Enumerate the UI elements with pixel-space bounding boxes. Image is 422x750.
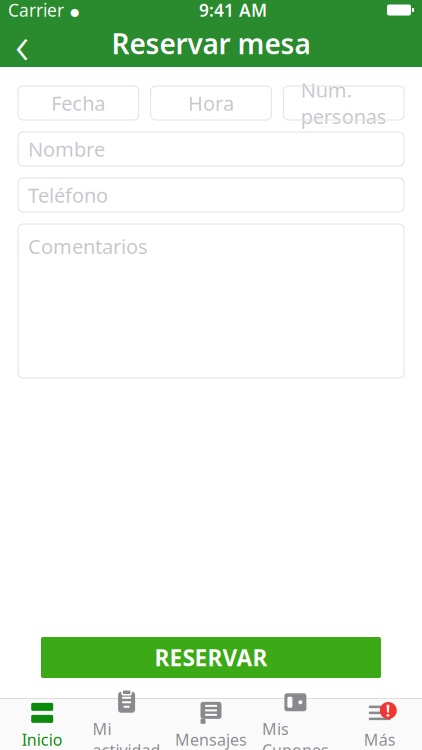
staticText: ! [386, 700, 391, 721]
staticText: Num. personas [301, 76, 387, 129]
staticText: Teléfono [28, 182, 108, 208]
staticText: Comentarios [28, 233, 148, 260]
button[interactable]: Mensajes [169, 695, 253, 750]
staticText: ● [70, 6, 79, 18]
staticText: Inicio [22, 729, 63, 750]
staticText: Mis Cupones [262, 718, 329, 750]
button[interactable]: Mis Cupones [253, 684, 338, 750]
staticText: Hora [188, 90, 234, 116]
staticText: Mi actividad [93, 718, 161, 750]
staticText: Fecha [51, 90, 105, 116]
staticText: RESERVAR [154, 642, 267, 672]
staticText: Más [364, 729, 396, 750]
button[interactable]: Back [0, 21, 44, 65]
button[interactable]: ! [338, 695, 422, 750]
staticText: 9:41 AM [199, 0, 267, 21]
button[interactable]: Mi actividad [84, 684, 169, 750]
staticText: Nombre [28, 136, 105, 162]
staticText: Mensajes [175, 729, 247, 750]
staticText: Reservar mesa [111, 25, 310, 62]
staticText: ‹ [15, 8, 29, 79]
staticText: Carrier [8, 0, 64, 21]
button[interactable]: RESERVAR [41, 637, 381, 678]
button[interactable]: Inicio [0, 695, 84, 750]
